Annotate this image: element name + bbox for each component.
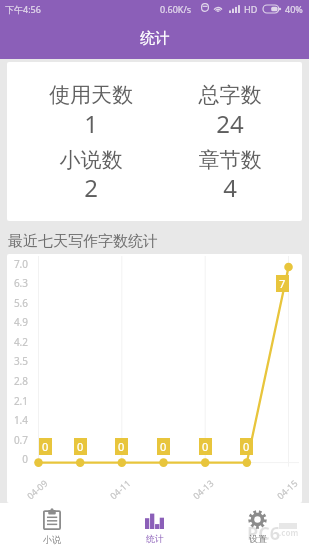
staticText: 0 <box>7 452 28 466</box>
staticText: 统计 <box>146 533 164 544</box>
staticText: 40% <box>285 3 303 15</box>
staticText: HD <box>244 3 258 15</box>
staticText: 设置 <box>249 533 267 544</box>
staticText: 0.7 <box>7 433 28 447</box>
staticText: 7.0 <box>7 257 28 271</box>
staticText: 小说 <box>43 534 61 545</box>
staticText: 04-13 <box>190 476 216 501</box>
other: 设置 <box>248 510 267 529</box>
staticText: 04-11 <box>107 476 133 501</box>
staticText: 章节数 <box>170 147 290 173</box>
staticText: 0 <box>42 439 49 454</box>
staticText: PC6 <box>247 521 281 546</box>
staticText: 使用天数 <box>31 82 151 108</box>
staticText: 3.5 <box>7 354 28 368</box>
staticText: 2.8 <box>7 374 28 388</box>
staticText: 1.4 <box>7 413 28 427</box>
staticText: 0 <box>77 439 84 454</box>
staticText: 0.60K/s <box>160 3 192 15</box>
staticText: 2.1 <box>7 394 28 408</box>
staticText: 统计 <box>140 29 170 48</box>
button[interactable]: 设置 <box>206 503 309 550</box>
button[interactable]: 小说 <box>0 503 103 550</box>
staticText: 2 <box>31 171 151 204</box>
staticText: 24 <box>170 107 290 140</box>
staticText: 04-15 <box>274 476 300 501</box>
staticText: 下午4:56 <box>5 3 41 15</box>
button[interactable]: 统计 <box>103 503 206 550</box>
staticText: 最近七天写作字数统计 <box>8 232 158 251</box>
staticText: .com <box>279 527 299 538</box>
staticText: 4.2 <box>7 335 28 349</box>
staticText: 总字数 <box>170 82 290 108</box>
staticText: 0 <box>243 439 250 454</box>
staticText: 0 <box>202 439 209 454</box>
staticText: 4.9 <box>7 315 28 329</box>
staticText: 04-09 <box>24 476 50 501</box>
staticText: 1 <box>31 107 151 140</box>
staticText: 0 <box>160 439 167 454</box>
staticText: 4 <box>170 171 290 204</box>
staticText: 5.6 <box>7 296 28 310</box>
staticText: 7 <box>279 276 286 291</box>
staticText: 小说数 <box>31 147 151 173</box>
staticText: 0 <box>118 439 125 454</box>
staticText: 6.3 <box>7 276 28 290</box>
